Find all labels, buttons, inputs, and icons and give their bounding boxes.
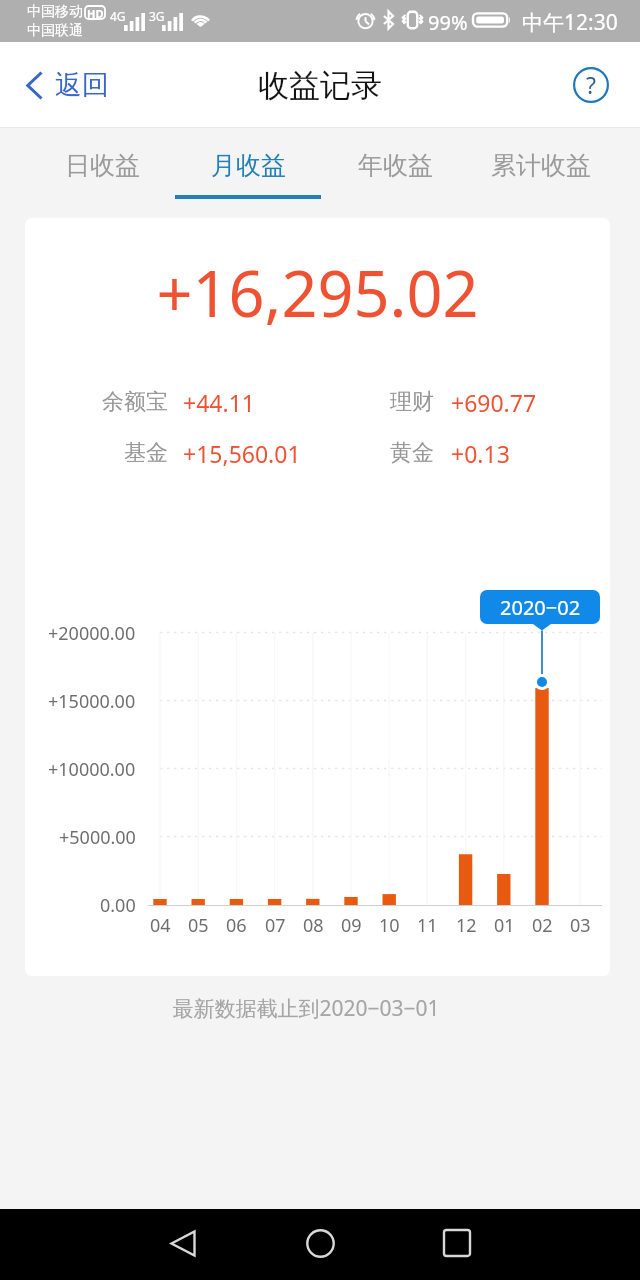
staticText: 理财 [390,388,434,416]
button[interactable]: Back [152,1212,214,1274]
staticText: 最新数据截止到2020−03−01 [0,994,626,1023]
staticText: 累计收益 [491,150,591,181]
staticText: ? [586,69,596,100]
staticText: 06 [226,913,247,938]
staticText: 01 [494,913,515,938]
staticText: +15,560.01 [183,438,301,469]
staticText: +44.11 [183,387,255,418]
button[interactable]: 年收益 [322,128,468,218]
staticText: 07 [265,913,286,938]
staticText: +690.77 [451,387,537,418]
staticText: 日收益 [65,150,140,181]
staticText: 10 [379,913,400,938]
staticText: 中午12:30 [522,8,618,37]
staticText: 收益记录 [258,66,382,105]
staticText: 4G [110,8,126,24]
staticText: 11 [417,913,438,938]
staticText: 02 [532,913,553,938]
staticText: +0.13 [451,438,510,469]
staticText: 黄金 [390,439,434,467]
button[interactable]: 2020−02 [480,590,600,624]
button[interactable]: 累计收益 [468,128,614,218]
staticText: 余额宝 [102,388,168,416]
staticText: 中国联通 [27,22,83,40]
staticText: 年收益 [358,150,433,181]
button[interactable]: 返回 [0,56,127,114]
staticText: HD [87,6,104,19]
staticText: +16,295.02 [25,250,610,336]
staticText: 04 [150,913,171,938]
button[interactable]: Recents [426,1212,488,1274]
staticText: 月收益 [211,150,286,181]
button[interactable]: Home [289,1212,351,1274]
staticText: 12 [456,913,477,938]
staticText: +15000.00 [48,689,136,714]
staticText: 99% [428,9,468,36]
staticText: 0.00 [100,893,136,918]
staticText: +5000.00 [59,825,136,850]
button[interactable]: Help [564,58,618,112]
button[interactable]: 月收益 [175,128,321,218]
staticText: +20000.00 [48,621,136,646]
staticText: 中国移动 [27,3,83,21]
staticText: 03 [570,913,591,938]
staticText: 返回 [55,68,109,102]
staticText: +10000.00 [48,757,136,782]
staticText: 09 [341,913,362,938]
staticText: 05 [188,913,209,938]
staticText: 2020−02 [500,594,581,621]
staticText: 08 [303,913,324,938]
staticText: 基金 [124,439,168,467]
button[interactable]: 日收益 [29,128,175,218]
staticText: 3G [149,8,165,24]
